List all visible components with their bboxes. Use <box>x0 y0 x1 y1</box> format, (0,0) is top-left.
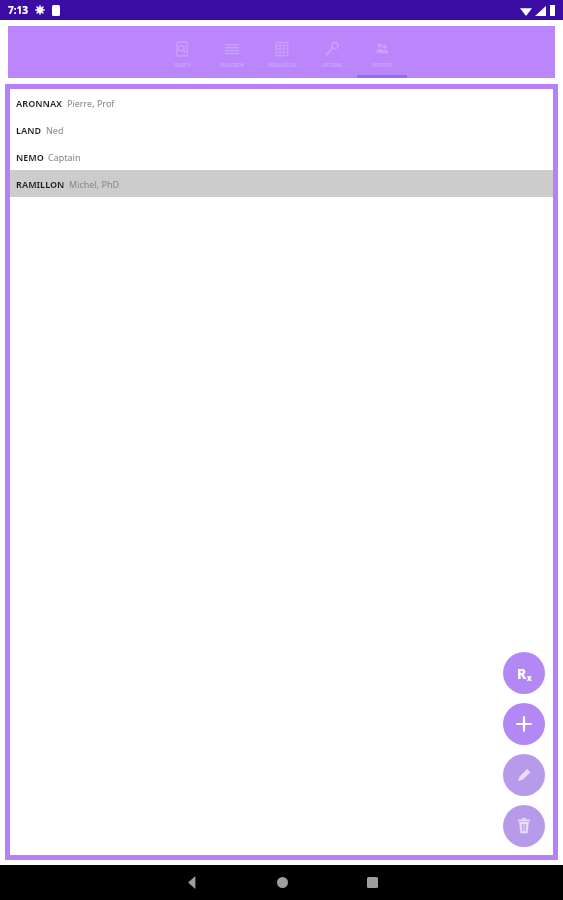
button[interactable]: PATIENTS <box>357 26 407 78</box>
staticText: ARONNAX <box>16 97 63 109</box>
button[interactable]: Delete patient <box>503 805 545 847</box>
button[interactable]: NEMO <box>10 143 553 170</box>
staticText: PATIENTS <box>372 62 393 68</box>
staticText: SEARCH <box>174 62 191 68</box>
staticText: Captain <box>48 151 81 163</box>
staticText: Pierre, Prof <box>67 97 115 109</box>
button[interactable]: SEARCH <box>157 26 207 78</box>
staticText: Michel, PhD <box>69 178 120 190</box>
button[interactable]: EVALUATION <box>257 26 307 78</box>
staticText: LAND <box>16 124 42 136</box>
button[interactable]: SELECTION <box>207 26 257 78</box>
staticText: x <box>527 672 532 683</box>
button[interactable]: Prescription <box>503 652 545 694</box>
button[interactable]: Add patient <box>503 703 545 745</box>
staticText: R <box>517 664 527 683</box>
button[interactable]: Recent apps <box>327 865 417 900</box>
staticText: Ned <box>46 124 64 136</box>
button[interactable]: OPTIONS <box>307 26 357 78</box>
button[interactable]: Edit patient <box>503 754 545 796</box>
staticText: OPTIONS <box>322 62 342 68</box>
staticText: RAMILLON <box>16 178 65 190</box>
button[interactable]: RAMILLON <box>10 170 553 197</box>
staticText: NEMO <box>16 151 44 163</box>
button[interactable]: Home <box>237 865 327 900</box>
button[interactable]: Back <box>147 865 237 900</box>
staticText: EVALUATION <box>268 62 296 68</box>
staticText: 7:13 <box>8 3 28 17</box>
staticText: SELECTION <box>220 62 244 68</box>
button[interactable]: ARONNAX <box>10 89 553 116</box>
button[interactable]: LAND <box>10 116 553 143</box>
